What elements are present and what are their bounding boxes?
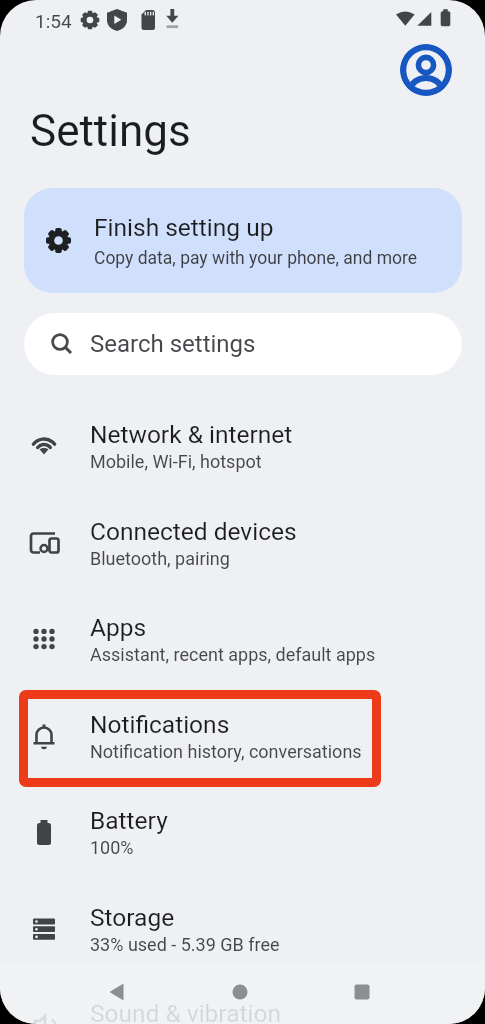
staticText: Assistant, recent apps, default apps <box>90 644 376 665</box>
button[interactable]: Notifications <box>0 687 485 784</box>
staticText: Notification history, conversations <box>90 741 362 762</box>
button[interactable] <box>400 44 452 96</box>
staticText: Finish setting up <box>94 213 274 242</box>
staticText: 33% used - 5.39 GB free <box>90 934 280 955</box>
button[interactable]: Search settings <box>24 313 462 375</box>
staticText: 1:54 <box>35 10 72 32</box>
staticText: Connected devices <box>90 517 297 546</box>
button[interactable]: Sound & vibration <box>0 976 485 1024</box>
staticText: Apps <box>90 613 147 642</box>
staticText: Bluetooth, pairing <box>90 548 230 569</box>
staticText: Mobile, Wi-Fi, hotspot <box>90 451 262 472</box>
staticText: Sound & vibration <box>90 999 281 1024</box>
button[interactable]: Connected devices <box>0 494 485 591</box>
staticText: Search settings <box>90 330 256 358</box>
button[interactable]: Apps <box>0 590 485 687</box>
button[interactable] <box>99 974 135 1010</box>
staticText: Copy data, pay with your phone, and more <box>94 248 418 269</box>
button[interactable]: Battery <box>0 783 485 880</box>
button[interactable]: Network & internet <box>0 397 485 494</box>
button[interactable]: Finish setting up <box>24 188 462 293</box>
staticText: Settings <box>30 105 191 157</box>
staticText: 100% <box>90 837 134 858</box>
button[interactable] <box>222 974 258 1010</box>
button[interactable]: Storage <box>0 880 485 977</box>
staticText: Notifications <box>90 710 230 739</box>
button[interactable] <box>344 974 380 1010</box>
staticText: Battery <box>90 806 168 835</box>
staticText: Storage <box>90 903 175 932</box>
staticText: Network & internet <box>90 420 293 449</box>
